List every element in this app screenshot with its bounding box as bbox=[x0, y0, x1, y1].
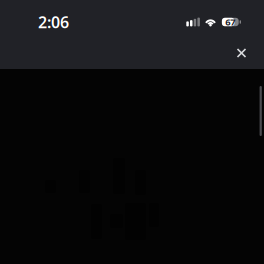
staticText: 2:06 bbox=[38, 11, 69, 33]
button[interactable]: Close bbox=[226, 39, 256, 67]
staticText: 67 bbox=[225, 16, 235, 28]
